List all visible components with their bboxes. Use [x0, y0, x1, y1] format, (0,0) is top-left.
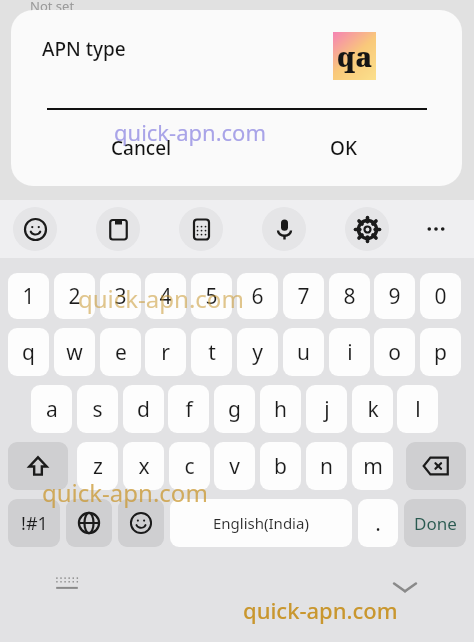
staticText: z: [93, 452, 103, 481]
button[interactable]: More options: [419, 212, 453, 246]
staticText: 2: [68, 282, 81, 311]
staticText: .: [375, 509, 381, 538]
button[interactable]: k: [352, 385, 393, 433]
staticText: d: [137, 395, 150, 424]
staticText: Not set: [30, 0, 75, 15]
button[interactable]: Hide keyboard: [388, 577, 422, 597]
staticText: m: [363, 452, 383, 481]
staticText: 6: [251, 282, 264, 311]
button[interactable]: Done: [404, 499, 466, 547]
button[interactable]: 1: [8, 273, 49, 319]
staticText: j: [324, 395, 330, 424]
button[interactable]: v: [214, 442, 255, 490]
button[interactable]: Clipboard: [96, 207, 140, 251]
staticText: q: [22, 338, 35, 367]
staticText: quick-apn.com: [243, 595, 398, 625]
button[interactable]: Sticker keyboard: [179, 207, 223, 251]
button[interactable]: 0: [420, 273, 461, 319]
button[interactable]: Backspace: [406, 442, 466, 490]
staticText: Cancel: [111, 135, 172, 161]
button[interactable]: 8: [329, 273, 370, 319]
button[interactable]: r: [145, 328, 186, 376]
button[interactable]: s: [77, 385, 118, 433]
button[interactable]: Cancel: [103, 131, 180, 165]
staticText: 9: [388, 282, 401, 311]
staticText: 8: [343, 282, 356, 311]
staticText: b: [274, 452, 287, 481]
button[interactable]: Change language: [66, 499, 112, 547]
button[interactable]: Emoji: [13, 207, 57, 251]
button[interactable]: z: [77, 442, 118, 490]
staticText: quick-apn.com: [42, 476, 208, 509]
staticText: l: [415, 395, 421, 424]
staticText: w: [66, 338, 83, 367]
button[interactable]: n: [306, 442, 347, 490]
staticText: e: [115, 338, 127, 367]
button[interactable]: d: [123, 385, 164, 433]
button[interactable]: .: [358, 499, 398, 547]
staticText: Done: [414, 512, 457, 535]
button[interactable]: 7: [283, 273, 324, 319]
button[interactable]: m: [352, 442, 393, 490]
button[interactable]: l: [397, 385, 438, 433]
button[interactable]: !#1: [8, 499, 60, 547]
button[interactable]: i: [329, 328, 370, 376]
button[interactable]: h: [260, 385, 301, 433]
button[interactable]: b: [260, 442, 301, 490]
button[interactable]: t: [191, 328, 232, 376]
staticText: English(India): [213, 513, 309, 533]
staticText: c: [184, 452, 195, 481]
staticText: qa: [337, 38, 373, 75]
button[interactable]: a: [31, 385, 72, 433]
staticText: h: [274, 395, 287, 424]
staticText: u: [297, 338, 310, 367]
button[interactable]: Shift: [8, 442, 68, 490]
staticText: 7: [297, 282, 310, 311]
button[interactable]: e: [100, 328, 141, 376]
button[interactable]: w: [54, 328, 95, 376]
button[interactable]: p: [420, 328, 461, 376]
staticText: 3: [114, 282, 127, 311]
staticText: x: [138, 452, 150, 481]
button[interactable]: 6: [237, 273, 278, 319]
button[interactable]: Keyboard layout: [52, 573, 82, 591]
staticText: v: [229, 452, 240, 481]
staticText: a: [46, 395, 58, 424]
staticText: p: [434, 338, 447, 367]
button[interactable]: Voice input: [262, 207, 306, 251]
staticText: 4: [159, 282, 172, 311]
staticText: i: [347, 338, 353, 367]
button[interactable]: j: [306, 385, 347, 433]
button[interactable]: q: [8, 328, 49, 376]
staticText: 5: [205, 282, 218, 311]
staticText: f: [185, 395, 193, 424]
staticText: s: [92, 395, 103, 424]
button[interactable]: OK: [322, 131, 365, 165]
button[interactable]: 2: [54, 273, 95, 319]
staticText: o: [388, 338, 401, 367]
staticText: 0: [434, 282, 447, 311]
button[interactable]: Settings: [345, 207, 389, 251]
button[interactable]: English(India): [170, 499, 352, 547]
button[interactable]: f: [168, 385, 209, 433]
button[interactable]: u: [283, 328, 324, 376]
staticText: k: [367, 395, 379, 424]
button[interactable]: o: [374, 328, 415, 376]
button[interactable]: Emoji: [118, 499, 164, 547]
staticText: g: [228, 395, 241, 424]
button[interactable]: 5: [191, 273, 232, 319]
button[interactable]: 4: [145, 273, 186, 319]
button[interactable]: g: [214, 385, 255, 433]
button[interactable]: 3: [100, 273, 141, 319]
staticText: t: [208, 338, 216, 367]
staticText: n: [320, 452, 333, 481]
staticText: OK: [330, 135, 357, 161]
staticText: r: [161, 338, 170, 367]
staticText: y: [252, 338, 263, 367]
button[interactable]: x: [123, 442, 164, 490]
button[interactable]: c: [169, 442, 210, 490]
button[interactable]: y: [237, 328, 278, 376]
button[interactable]: 9: [374, 273, 415, 319]
staticText: 1: [22, 282, 35, 311]
staticText: !#1: [21, 511, 48, 536]
